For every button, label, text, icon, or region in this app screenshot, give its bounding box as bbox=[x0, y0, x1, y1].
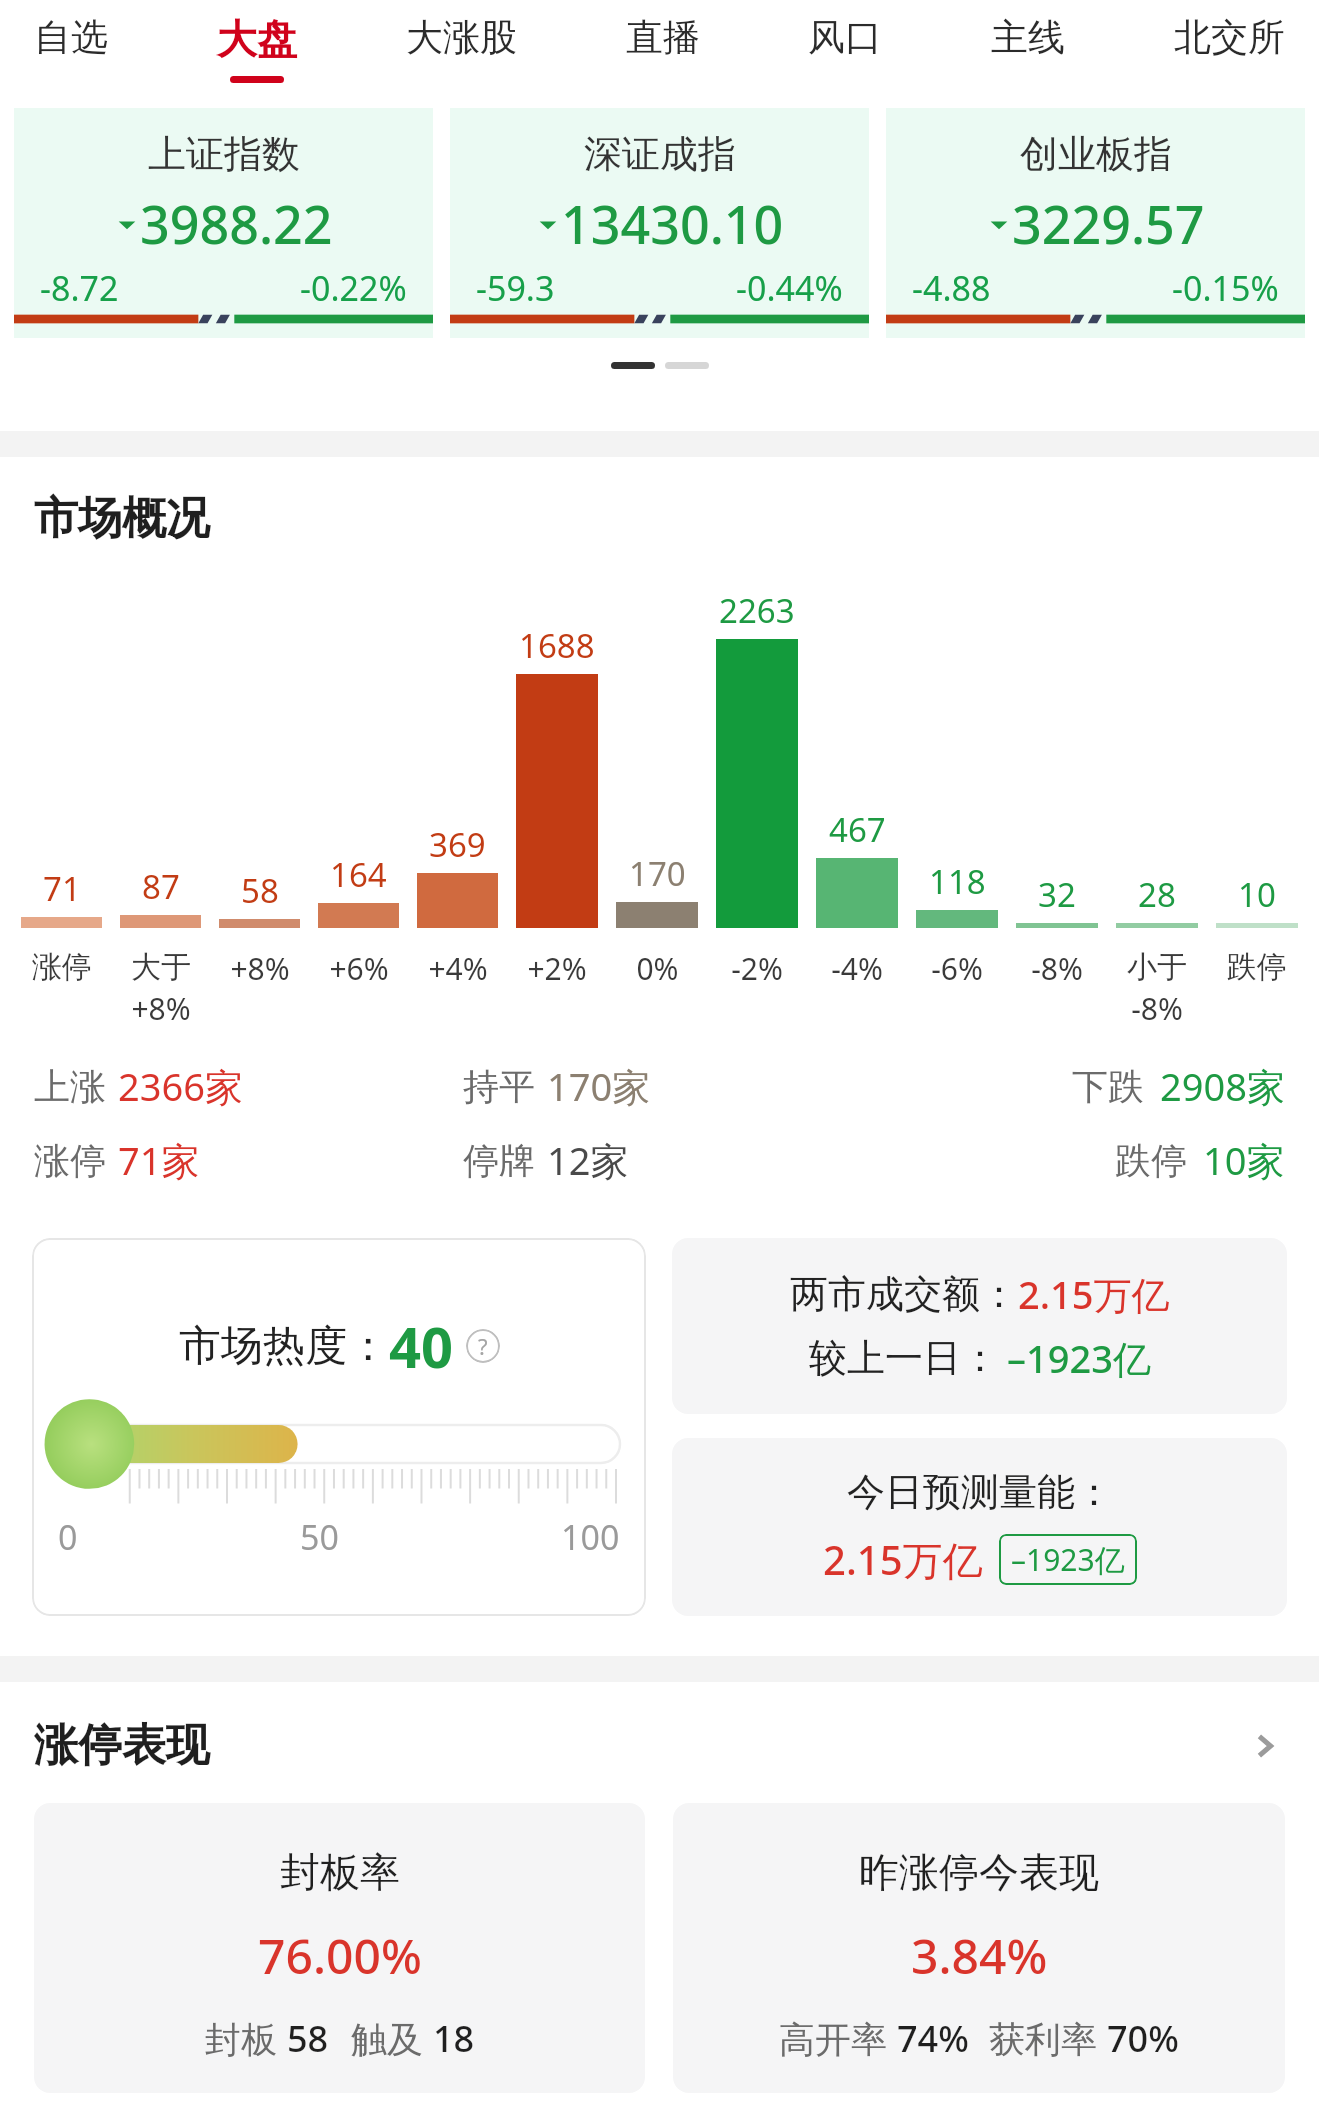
button[interactable]: 大盘 bbox=[213, 0, 301, 83]
button[interactable]: 涨停表现 bbox=[34, 1718, 1285, 1773]
staticText: 164 bbox=[330, 852, 387, 897]
staticText: -0.44% bbox=[736, 265, 843, 311]
staticText: -59.3 bbox=[476, 265, 555, 311]
staticText: 40 bbox=[389, 1308, 454, 1384]
staticText: 58 bbox=[241, 868, 279, 913]
button[interactable]: 今日预测量能： bbox=[672, 1438, 1287, 1616]
staticText: 1688 bbox=[519, 623, 595, 668]
staticText: 2263 bbox=[719, 588, 795, 633]
staticText: 北交所 bbox=[1174, 14, 1285, 61]
other: 更多 bbox=[1245, 1726, 1285, 1766]
button[interactable]: 大涨股 bbox=[402, 0, 521, 73]
staticText: 涨停 bbox=[32, 948, 92, 986]
staticText: 76.00% bbox=[258, 1923, 422, 1988]
button[interactable]: 市场概况 bbox=[34, 491, 210, 546]
staticText: -6% bbox=[931, 948, 983, 989]
staticText: 市场热度： bbox=[179, 1320, 389, 1373]
staticText: -4% bbox=[831, 948, 883, 989]
staticText: 467 bbox=[829, 807, 886, 852]
staticText: 持平 bbox=[463, 1064, 535, 1109]
staticText: 0 bbox=[58, 1514, 78, 1560]
staticText: 170 bbox=[629, 851, 686, 896]
staticText: +6% bbox=[329, 948, 389, 989]
button[interactable]: 市场热度： bbox=[32, 1238, 646, 1616]
staticText: 50 bbox=[300, 1514, 339, 1560]
staticText: 100 bbox=[561, 1514, 620, 1560]
staticText: 13430.10 bbox=[561, 188, 784, 259]
staticText: –1923亿 bbox=[1007, 1332, 1151, 1384]
staticText: 涨停 bbox=[34, 1138, 106, 1183]
button[interactable]: 两市成交额： bbox=[672, 1238, 1287, 1414]
staticText: –1923亿 bbox=[1011, 1539, 1125, 1580]
button[interactable]: 风口 bbox=[804, 0, 886, 73]
staticText: -8.72 bbox=[40, 265, 119, 311]
staticText: 369 bbox=[429, 822, 486, 867]
staticText: 70% bbox=[1107, 2014, 1179, 2063]
staticText: 深证成指 bbox=[584, 130, 736, 178]
staticText: 两市成交额： bbox=[790, 1270, 1018, 1318]
staticText: 2.15万亿 bbox=[823, 1532, 983, 1587]
button[interactable]: 昨涨停今表现 bbox=[673, 1803, 1285, 2093]
staticText: 2908家 bbox=[1160, 1060, 1285, 1112]
staticText: 大盘 bbox=[217, 14, 297, 64]
staticText: -4.88 bbox=[912, 265, 991, 311]
staticText: 涨停表现 bbox=[34, 1718, 210, 1773]
button[interactable]: 自选 bbox=[30, 0, 112, 73]
staticText: 大于 bbox=[131, 948, 191, 986]
button[interactable]: 创业板指 bbox=[886, 108, 1305, 338]
staticText: 上证指数 bbox=[148, 130, 300, 178]
staticText: 大涨股 bbox=[406, 14, 517, 61]
staticText: 停牌 bbox=[463, 1138, 535, 1183]
button[interactable]: 封板率 bbox=[34, 1803, 645, 2093]
staticText: 71家 bbox=[118, 1134, 200, 1186]
staticText: 较上一日： bbox=[809, 1334, 999, 1382]
staticText: 自选 bbox=[34, 14, 108, 61]
staticText: 高开率 bbox=[779, 2014, 897, 2063]
button[interactable]: 深证成指 bbox=[450, 108, 869, 338]
staticText: 74% bbox=[897, 2014, 969, 2063]
staticText: -8% bbox=[1131, 988, 1183, 1026]
button[interactable]: 帮助 bbox=[466, 1329, 500, 1363]
staticText: 主线 bbox=[991, 14, 1065, 61]
staticText: 昨涨停今表现 bbox=[859, 1847, 1099, 1897]
staticText: 触及 bbox=[351, 2014, 433, 2063]
staticText: -0.15% bbox=[1172, 265, 1279, 311]
staticText: 3.84% bbox=[911, 1923, 1048, 1988]
staticText: +2% bbox=[527, 948, 587, 989]
staticText: ? bbox=[478, 1331, 488, 1361]
staticText: 今日预测量能： bbox=[847, 1468, 1113, 1516]
staticText: 获利率 bbox=[989, 2014, 1107, 2063]
staticText: 12家 bbox=[547, 1134, 629, 1186]
staticText: 10家 bbox=[1203, 1134, 1285, 1186]
staticText: 58 bbox=[287, 2014, 329, 2063]
staticText: 10 bbox=[1238, 872, 1276, 917]
staticText: 71 bbox=[43, 866, 81, 911]
staticText: 3988.22 bbox=[140, 188, 333, 259]
staticText: +8% bbox=[230, 948, 290, 989]
staticText: 小于 bbox=[1127, 948, 1187, 986]
button[interactable]: 主线 bbox=[987, 0, 1069, 73]
staticText: 118 bbox=[929, 859, 986, 904]
staticText: 87 bbox=[142, 864, 180, 909]
button[interactable]: 直播 bbox=[622, 0, 704, 73]
button[interactable]: 北交所 bbox=[1170, 0, 1289, 73]
staticText: 创业板指 bbox=[1020, 130, 1172, 178]
staticText: 32 bbox=[1038, 872, 1076, 917]
staticText: 直播 bbox=[626, 14, 700, 61]
staticText: +8% bbox=[131, 988, 191, 1026]
staticText: 封板率 bbox=[280, 1847, 400, 1897]
staticText: 风口 bbox=[808, 14, 882, 61]
staticText: 18 bbox=[433, 2014, 475, 2063]
staticText: -8% bbox=[1031, 948, 1083, 989]
staticText: 0% bbox=[636, 948, 679, 989]
staticText: 170家 bbox=[547, 1060, 651, 1112]
staticText: 28 bbox=[1138, 872, 1176, 917]
staticText: +4% bbox=[428, 948, 488, 989]
staticText: 跌停 bbox=[1115, 1138, 1187, 1183]
staticText: 上涨 bbox=[34, 1064, 106, 1109]
staticText: 2.15万亿 bbox=[1018, 1268, 1170, 1320]
button[interactable]: 上证指数 bbox=[14, 108, 433, 338]
staticText: -0.22% bbox=[300, 265, 407, 311]
staticText: 3229.57 bbox=[1012, 188, 1205, 259]
staticText: 下跌 bbox=[1072, 1064, 1144, 1109]
